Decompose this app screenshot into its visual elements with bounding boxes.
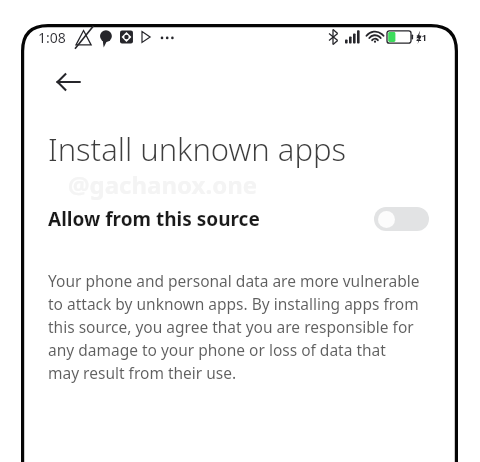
staticText: @gachanox.one	[68, 168, 258, 201]
staticText: 1:08	[38, 28, 66, 47]
staticText: Allow from this source	[48, 206, 260, 232]
button[interactable]: Allow from this source	[24, 196, 455, 242]
staticText: Your phone and personal data are more vu…	[48, 270, 420, 384]
staticText: 21	[416, 31, 427, 44]
other: Allow from this source toggle	[374, 207, 429, 231]
button[interactable]: Back	[44, 58, 92, 106]
staticText: Install unknown apps	[48, 128, 347, 170]
